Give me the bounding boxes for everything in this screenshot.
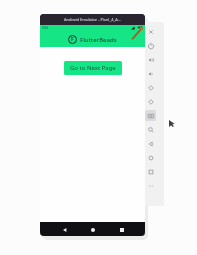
button[interactable]: Rotate left <box>137 80 164 94</box>
staticText: 9:04 <box>42 26 48 30</box>
button[interactable]: Rotate right <box>137 94 164 108</box>
button[interactable]: Go to Next Page <box>64 61 122 75</box>
staticText: Go to Next Page <box>70 64 116 72</box>
button[interactable]: More <box>137 178 164 192</box>
button[interactable]: Overview <box>137 164 164 178</box>
button[interactable]: Screenshot <box>137 108 164 122</box>
button[interactable]: Home <box>88 225 97 234</box>
staticText: F <box>71 36 74 43</box>
button[interactable]: Volume up <box>137 52 164 66</box>
button[interactable]: Zoom <box>137 122 164 136</box>
button[interactable]: Close <box>137 24 164 38</box>
button[interactable]: Back <box>60 225 69 234</box>
button[interactable]: Recent apps <box>117 225 126 234</box>
staticText: Android Emulator - Pixel_4_A... <box>64 17 121 22</box>
button[interactable]: Power <box>137 38 164 52</box>
button[interactable]: Back <box>137 136 164 150</box>
staticText: FlutterBeads <box>80 36 117 44</box>
button[interactable]: Volume down <box>137 66 164 80</box>
button[interactable]: Home <box>137 150 164 164</box>
